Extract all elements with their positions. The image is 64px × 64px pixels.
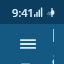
staticText: Dashboard [52,24,54,64]
staticText: 9:41 [12,5,34,20]
button[interactable]: Menu [10,26,46,62]
